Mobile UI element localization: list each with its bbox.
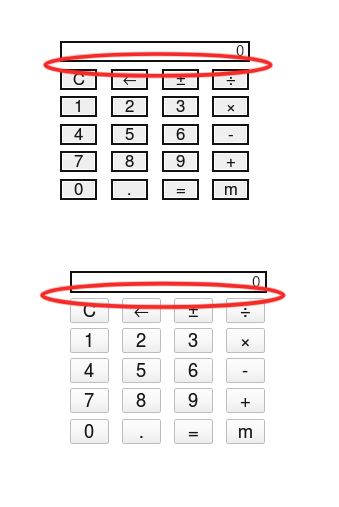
button[interactable]: ± (174, 298, 213, 323)
staticText: 4 (74, 127, 84, 142)
staticText: 2 (136, 332, 147, 350)
button[interactable]: C (63, 72, 94, 87)
staticText: . (127, 182, 132, 197)
button[interactable]: 5 (122, 358, 161, 383)
staticText: ← (123, 72, 137, 87)
button[interactable]: ± (165, 72, 196, 87)
button[interactable]: 5 (114, 127, 145, 142)
button[interactable]: 1 (70, 328, 109, 353)
button[interactable]: 4 (70, 358, 109, 383)
staticText: C (83, 302, 96, 320)
button[interactable]: 7 (70, 388, 109, 413)
button[interactable]: 0 (70, 271, 267, 293)
button[interactable]: 2 (114, 99, 145, 114)
button[interactable]: ÷ (215, 72, 246, 87)
button[interactable]: 8 (122, 388, 161, 413)
button[interactable]: 6 (165, 127, 196, 142)
button[interactable]: × (226, 328, 265, 353)
button[interactable]: ← (114, 72, 145, 87)
staticText: 8 (136, 392, 147, 410)
button[interactable]: 8 (114, 154, 145, 169)
staticText: + (240, 392, 251, 410)
staticText: m (224, 182, 238, 197)
staticText: . (139, 423, 144, 441)
button[interactable]: - (226, 358, 265, 383)
staticText: . (139, 423, 144, 441)
button[interactable]: 0 (70, 419, 109, 444)
button[interactable]: 3 (165, 99, 196, 114)
staticText: 1 (74, 99, 84, 114)
button[interactable]: = (165, 182, 196, 197)
button[interactable]: ← (122, 298, 161, 323)
staticText: 8 (125, 154, 135, 169)
staticText: ± (176, 72, 186, 87)
button[interactable]: m (215, 182, 246, 197)
staticText: m (238, 423, 253, 441)
staticText: 7 (84, 392, 95, 410)
staticText: 9 (188, 392, 199, 410)
staticText: ← (134, 302, 149, 320)
staticText: 9 (176, 154, 186, 169)
button[interactable]: 6 (174, 358, 213, 383)
staticText: × (240, 332, 251, 350)
staticText: 5 (125, 127, 135, 142)
staticText: m (224, 182, 238, 197)
staticText: 0 (74, 182, 84, 197)
staticText: 4 (84, 362, 95, 380)
staticText: - (242, 362, 249, 380)
staticText: 0 (236, 44, 245, 59)
staticText: m (238, 423, 253, 441)
staticText: 6 (176, 127, 186, 142)
button[interactable]: C (70, 298, 109, 323)
staticText: = (188, 423, 199, 441)
staticText: ÷ (240, 302, 251, 320)
staticText: 0 (84, 423, 95, 441)
staticText: 6 (188, 362, 199, 380)
button[interactable]: ÷ (226, 298, 265, 323)
staticText: 7 (84, 392, 95, 410)
staticText: + (226, 154, 236, 169)
staticText: × (226, 99, 236, 114)
staticText: 2 (136, 332, 147, 350)
button[interactable]: × (215, 99, 246, 114)
staticText: 3 (188, 332, 199, 350)
staticText: 3 (188, 332, 199, 350)
button[interactable]: + (226, 388, 265, 413)
staticText: 4 (84, 362, 95, 380)
staticText: C (73, 72, 85, 87)
staticText: 0 (252, 275, 261, 290)
staticText: 8 (136, 392, 147, 410)
button[interactable]: 9 (174, 388, 213, 413)
button[interactable]: = (174, 419, 213, 444)
button[interactable]: 9 (165, 154, 196, 169)
staticText: ← (123, 72, 137, 87)
staticText: ± (188, 302, 199, 320)
staticText: 3 (176, 99, 186, 114)
staticText: 0 (74, 182, 84, 197)
button[interactable]: . (122, 419, 161, 444)
staticText: - (228, 127, 234, 142)
button[interactable]: 7 (63, 154, 94, 169)
staticText: ± (176, 72, 186, 87)
staticText: 0 (84, 423, 95, 441)
button[interactable]: 1 (63, 99, 94, 114)
button[interactable]: 0 (60, 41, 250, 62)
staticText: - (228, 127, 234, 142)
staticText: 1 (84, 332, 95, 350)
staticText: 6 (176, 127, 186, 142)
staticText: ÷ (226, 72, 236, 87)
button[interactable]: 3 (174, 328, 213, 353)
button[interactable]: m (226, 419, 265, 444)
button[interactable]: + (215, 154, 246, 169)
button[interactable]: 2 (122, 328, 161, 353)
button[interactable]: 4 (63, 127, 94, 142)
staticText: ÷ (240, 302, 251, 320)
staticText: 7 (74, 154, 84, 169)
button[interactable]: . (114, 182, 145, 197)
staticText: + (240, 392, 251, 410)
button[interactable]: 0 (63, 182, 94, 197)
staticText: = (176, 182, 186, 197)
button[interactable]: - (215, 127, 246, 142)
staticText: × (226, 99, 236, 114)
staticText: C (83, 302, 96, 320)
